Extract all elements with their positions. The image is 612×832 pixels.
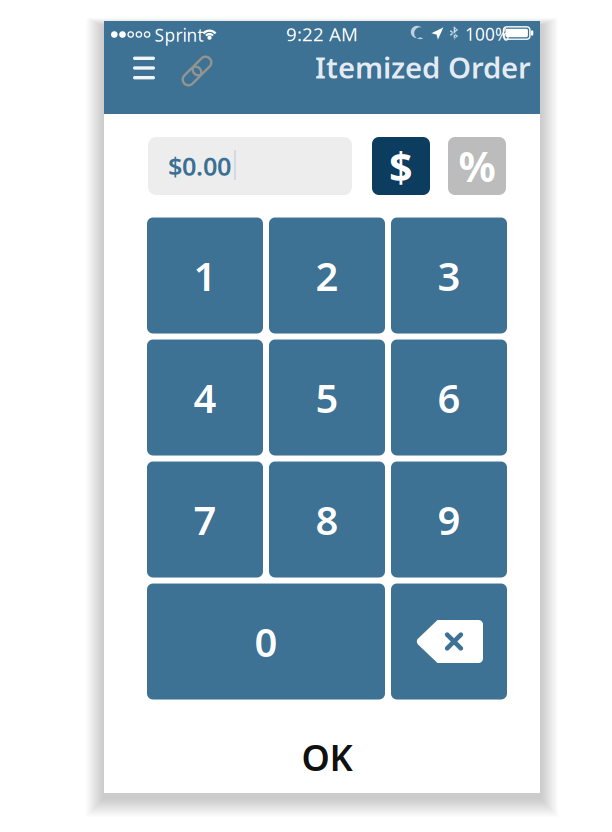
button[interactable]: Share link bbox=[181, 55, 213, 87]
button[interactable]: 6 bbox=[391, 339, 507, 455]
staticText: Sprint bbox=[154, 23, 203, 46]
button[interactable]: 0 bbox=[147, 583, 385, 699]
button[interactable]: 1 bbox=[147, 217, 263, 333]
staticText: 3 bbox=[437, 249, 460, 302]
staticText: 8 bbox=[315, 493, 338, 546]
button[interactable]: Menu bbox=[133, 56, 155, 80]
button[interactable]: OK bbox=[147, 726, 507, 788]
staticText: $0.00 bbox=[168, 149, 231, 183]
staticText: 4 bbox=[193, 371, 216, 424]
staticText: 9:22 AM bbox=[286, 22, 358, 46]
button[interactable]: % bbox=[448, 137, 506, 195]
staticText: 100% bbox=[465, 22, 509, 45]
staticText: 0 bbox=[254, 615, 277, 668]
staticText: 9 bbox=[437, 493, 460, 546]
button[interactable]: 5 bbox=[269, 339, 385, 455]
staticText: 6 bbox=[437, 371, 460, 424]
staticText: 1 bbox=[193, 249, 216, 302]
button[interactable]: 3 bbox=[391, 217, 507, 333]
staticText: Itemized Order bbox=[315, 47, 531, 86]
staticText: OK bbox=[301, 733, 352, 781]
staticText: 2 bbox=[315, 249, 338, 302]
button[interactable]: 4 bbox=[147, 339, 263, 455]
button[interactable]: Delete bbox=[391, 583, 507, 699]
button[interactable]: 9 bbox=[391, 461, 507, 577]
staticText: 5 bbox=[315, 371, 338, 424]
button[interactable]: 8 bbox=[269, 461, 385, 577]
button[interactable]: 2 bbox=[269, 217, 385, 333]
staticText: $ bbox=[389, 139, 413, 193]
button[interactable]: $ bbox=[372, 137, 430, 195]
staticText: 7 bbox=[193, 493, 216, 546]
staticText: % bbox=[458, 139, 495, 193]
button[interactable]: 7 bbox=[147, 461, 263, 577]
